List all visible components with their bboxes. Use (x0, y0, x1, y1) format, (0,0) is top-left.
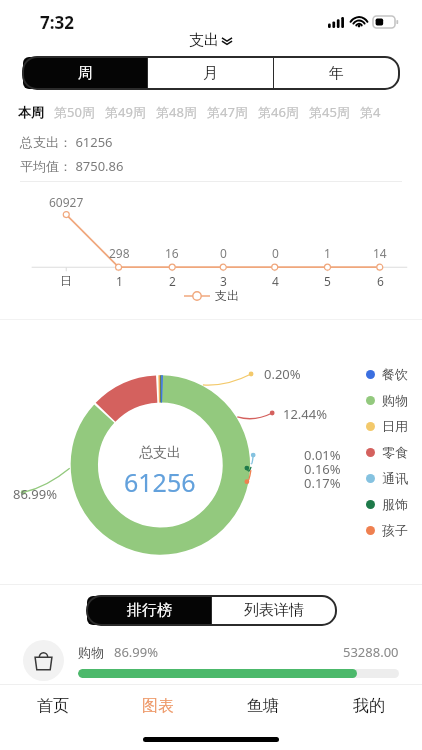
button[interactable]: 第4 (355, 102, 386, 122)
staticText: 86.99% (114, 643, 159, 661)
staticText: 支出 (189, 31, 219, 50)
staticText: 0.17% (304, 474, 341, 492)
staticText: 首页 (37, 696, 69, 716)
staticText: 第45周 (309, 103, 350, 121)
button[interactable]: 第45周 (304, 102, 355, 122)
staticText: 0.16% (304, 460, 341, 478)
staticText: 298 (109, 245, 130, 261)
staticText: 0.01% (304, 446, 341, 464)
staticText: 排行榜 (127, 601, 172, 620)
staticText: 通讯 (382, 470, 408, 486)
other: 购物 (23, 640, 64, 681)
button[interactable]: 首页 (0, 685, 105, 727)
button[interactable]: 第50周 (49, 102, 100, 122)
staticText: 购物 (382, 392, 408, 408)
staticText: 第47周 (207, 103, 248, 121)
staticText: 16 (165, 245, 179, 261)
staticText: 14 (373, 245, 387, 261)
staticText: 86.99% (13, 485, 58, 503)
staticText: 第50周 (54, 103, 95, 121)
staticText: 0 (220, 245, 227, 261)
staticText: 1 (324, 245, 331, 261)
staticText: 6 (377, 273, 384, 289)
staticText: 零食 (382, 444, 408, 460)
staticText: 第4 (360, 103, 381, 121)
staticText: 5 (324, 273, 331, 289)
staticText: 总支出： 61256 (20, 133, 113, 151)
staticText: 支出 (215, 288, 239, 303)
button[interactable]: 月 (148, 57, 273, 89)
button[interactable]: 购物 (0, 637, 422, 684)
staticText: 总支出 (139, 444, 181, 462)
staticText: 图表 (142, 696, 174, 716)
button[interactable]: 周 (23, 57, 147, 89)
staticText: 12.44% (283, 405, 328, 423)
button[interactable]: 排行榜 (87, 596, 211, 625)
button[interactable]: 第49周 (100, 102, 151, 122)
staticText: 第49周 (105, 103, 146, 121)
staticText: 2 (169, 273, 176, 289)
staticText: 周 (78, 64, 93, 83)
button[interactable]: 列表详情 (212, 596, 336, 625)
button[interactable]: 图表 (105, 685, 210, 727)
staticText: 列表详情 (244, 601, 304, 620)
staticText: 日 (60, 273, 72, 288)
button[interactable]: 支出 (184, 29, 238, 52)
staticText: 0 (272, 245, 279, 261)
staticText: 3 (220, 273, 227, 289)
staticText: 日用 (382, 418, 408, 434)
staticText: 61256 (124, 465, 196, 499)
staticText: 我的 (353, 696, 385, 716)
staticText: 60927 (49, 194, 84, 210)
button[interactable]: 鱼塘 (210, 685, 316, 727)
staticText: 本周 (18, 104, 44, 120)
staticText: 平均值： 8750.86 (20, 157, 124, 175)
button[interactable]: 第48周 (151, 102, 202, 122)
staticText: 4 (272, 273, 279, 289)
button[interactable]: 第46周 (253, 102, 304, 122)
button[interactable]: 我的 (316, 685, 422, 727)
staticText: 1 (116, 273, 123, 289)
staticText: 第48周 (156, 103, 197, 121)
staticText: 鱼塘 (247, 696, 279, 716)
staticText: 7:32 (40, 11, 74, 34)
staticText: 年 (329, 64, 344, 83)
staticText: 孩子 (382, 522, 408, 538)
staticText: 0.20% (264, 365, 301, 383)
button[interactable]: 本周 (13, 103, 49, 121)
button[interactable]: 年 (274, 57, 399, 89)
staticText: 餐饮 (382, 366, 408, 382)
button[interactable]: 第47周 (202, 102, 253, 122)
staticText: 月 (203, 64, 218, 83)
staticText: 53288.00 (343, 643, 399, 661)
staticText: 购物 (78, 644, 104, 660)
staticText: 服饰 (382, 496, 408, 512)
staticText: 第46周 (258, 103, 299, 121)
